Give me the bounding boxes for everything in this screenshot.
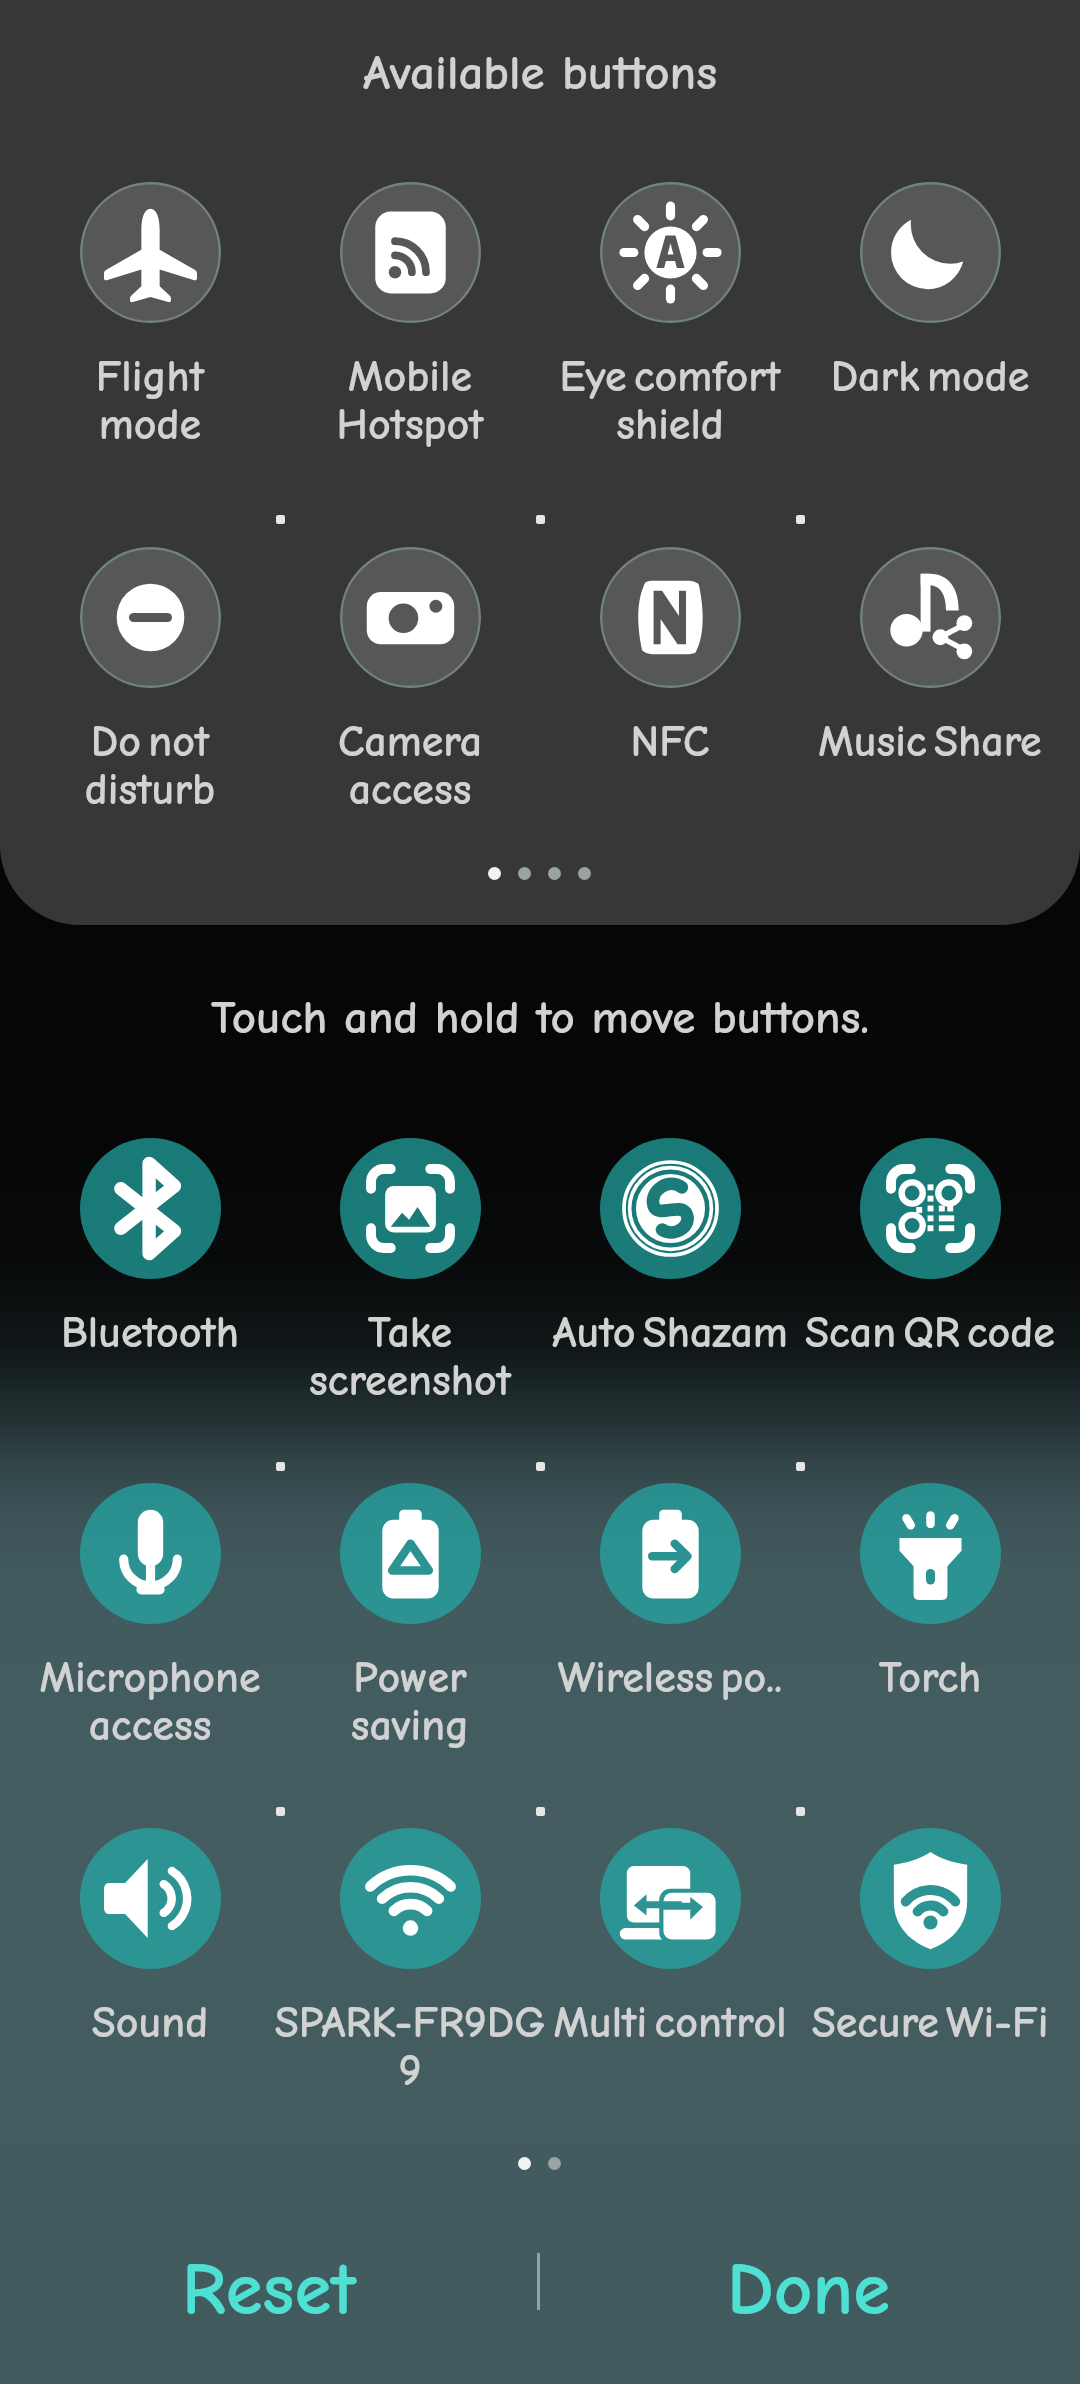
button[interactable]: Sound	[0, 1828, 325, 2078]
staticText: Wireless po..	[495, 1652, 845, 1703]
button[interactable]: Wireless power	[495, 1483, 845, 1733]
button[interactable]: Scan QR code	[755, 1138, 1080, 1388]
button[interactable]: Multi control	[495, 1828, 845, 2078]
staticText: Take screenshot	[235, 1307, 585, 1406]
staticText: SPARK-FR9DG 9	[235, 1997, 585, 2096]
button[interactable]: Dark mode	[755, 182, 1080, 432]
button[interactable]: NFC	[495, 547, 845, 797]
button[interactable]: Microphone access	[0, 1483, 325, 1733]
staticText: Available buttons	[0, 45, 1080, 101]
staticText: Multi control	[495, 1997, 845, 2048]
staticText: Auto Shazam	[495, 1307, 845, 1358]
staticText: Reset	[182, 2246, 356, 2332]
button[interactable]: Wi-Fi	[235, 1828, 585, 2078]
staticText: Eye comfort shield	[495, 351, 845, 450]
button[interactable]: Music Share	[755, 547, 1080, 797]
button[interactable]: Torch	[755, 1483, 1080, 1733]
staticText: Sound	[0, 1997, 325, 2048]
button[interactable]: Camera access	[235, 547, 585, 797]
staticText: Dark mode	[755, 351, 1080, 402]
staticText: Bluetooth	[0, 1307, 325, 1358]
button[interactable]: Mobile Hotspot	[235, 182, 585, 432]
button[interactable]: Auto Shazam	[495, 1138, 845, 1388]
staticText: Music Share	[755, 716, 1080, 767]
button[interactable]: Take screenshot	[235, 1138, 585, 1388]
staticText: Mobile Hotspot	[235, 351, 585, 450]
button[interactable]: Bluetooth	[0, 1138, 325, 1388]
staticText: Torch	[755, 1652, 1080, 1703]
staticText: Power saving	[235, 1652, 585, 1751]
button[interactable]: Power saving	[235, 1483, 585, 1733]
button[interactable]: Secure Wi-Fi	[755, 1828, 1080, 2078]
staticText: Do not disturb	[0, 716, 325, 815]
button[interactable]: Eye comfort shield	[495, 182, 845, 432]
staticText: NFC	[495, 716, 845, 767]
staticText: Touch and hold to move buttons.	[0, 991, 1080, 1045]
button[interactable]: Flight mode	[0, 182, 325, 432]
staticText: Camera access	[235, 716, 585, 815]
button[interactable]: Do not disturb	[0, 547, 325, 797]
staticText: Secure Wi-Fi	[755, 1997, 1080, 2048]
button[interactable]: Done	[537, 2212, 1080, 2366]
button[interactable]: Reset	[0, 2212, 537, 2366]
staticText: Microphone access	[0, 1652, 325, 1751]
staticText: Flight mode	[0, 351, 325, 450]
staticText: Done	[727, 2246, 891, 2332]
staticText: Scan QR code	[755, 1307, 1080, 1358]
